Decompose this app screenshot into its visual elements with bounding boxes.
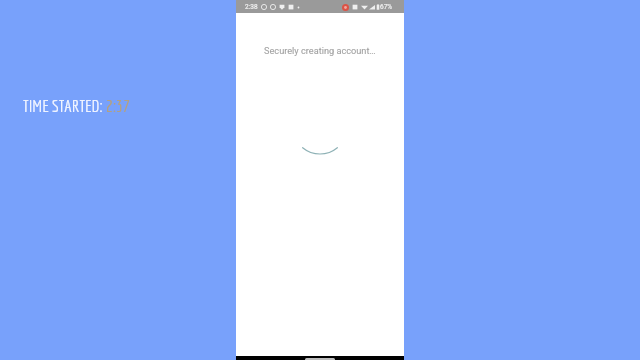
staticText: 2:38: [245, 3, 258, 11]
staticText: 67%: [380, 3, 393, 11]
button[interactable]: Home: [305, 358, 335, 360]
staticText: TIME STARTED: 2:37: [23, 96, 130, 116]
button[interactable]: Stop screen recording: [342, 4, 349, 11]
staticText: Securely creating account…: [264, 45, 376, 56]
